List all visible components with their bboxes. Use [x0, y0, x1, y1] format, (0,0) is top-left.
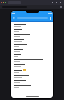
button[interactable] — [11, 53, 53, 58]
button[interactable] — [11, 28, 53, 33]
button[interactable] — [11, 79, 53, 84]
button[interactable]: More options — [49, 17, 52, 20]
button[interactable] — [11, 33, 53, 38]
button[interactable] — [11, 68, 53, 74]
button[interactable]: Window controls — [1, 2, 6, 3]
button[interactable] — [11, 48, 53, 53]
button[interactable]: Toolbar action — [59, 1, 62, 4]
button[interactable] — [11, 63, 53, 68]
button[interactable] — [11, 74, 53, 79]
button[interactable]: Back — [12, 16, 16, 20]
button[interactable] — [11, 38, 53, 43]
button[interactable]: Toolbar action — [55, 1, 58, 4]
button[interactable]: Toolbar action — [51, 1, 54, 4]
button[interactable] — [17, 17, 48, 19]
button[interactable] — [11, 43, 53, 48]
button[interactable] — [11, 23, 53, 28]
button[interactable] — [11, 84, 53, 89]
button[interactable] — [11, 58, 53, 63]
